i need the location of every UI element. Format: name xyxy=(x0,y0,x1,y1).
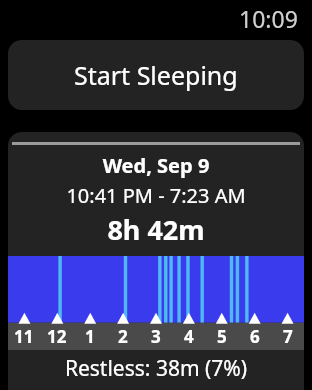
staticText: 12 xyxy=(47,325,67,348)
staticText: 7 xyxy=(283,325,293,348)
staticText: 11 xyxy=(14,325,34,348)
staticText: Start Sleeping xyxy=(74,58,238,92)
staticText: Restless: 38m (7%) xyxy=(8,354,304,383)
staticText: 5 xyxy=(217,325,227,348)
staticText: 2 xyxy=(118,325,128,348)
staticText: 6 xyxy=(250,325,260,348)
staticText: 8h 42m xyxy=(8,211,304,248)
staticText: 10:41 PM - 7:23 AM xyxy=(8,182,304,209)
staticText: Wed, Sep 9 xyxy=(8,152,304,179)
staticText: 10:09 xyxy=(239,3,298,34)
staticText: 3 xyxy=(151,325,161,348)
button[interactable]: Wed, Sep 9 xyxy=(8,132,304,390)
button[interactable]: Start Sleeping xyxy=(8,40,304,110)
staticText: 4 xyxy=(184,325,194,348)
staticText: 1 xyxy=(85,325,95,348)
